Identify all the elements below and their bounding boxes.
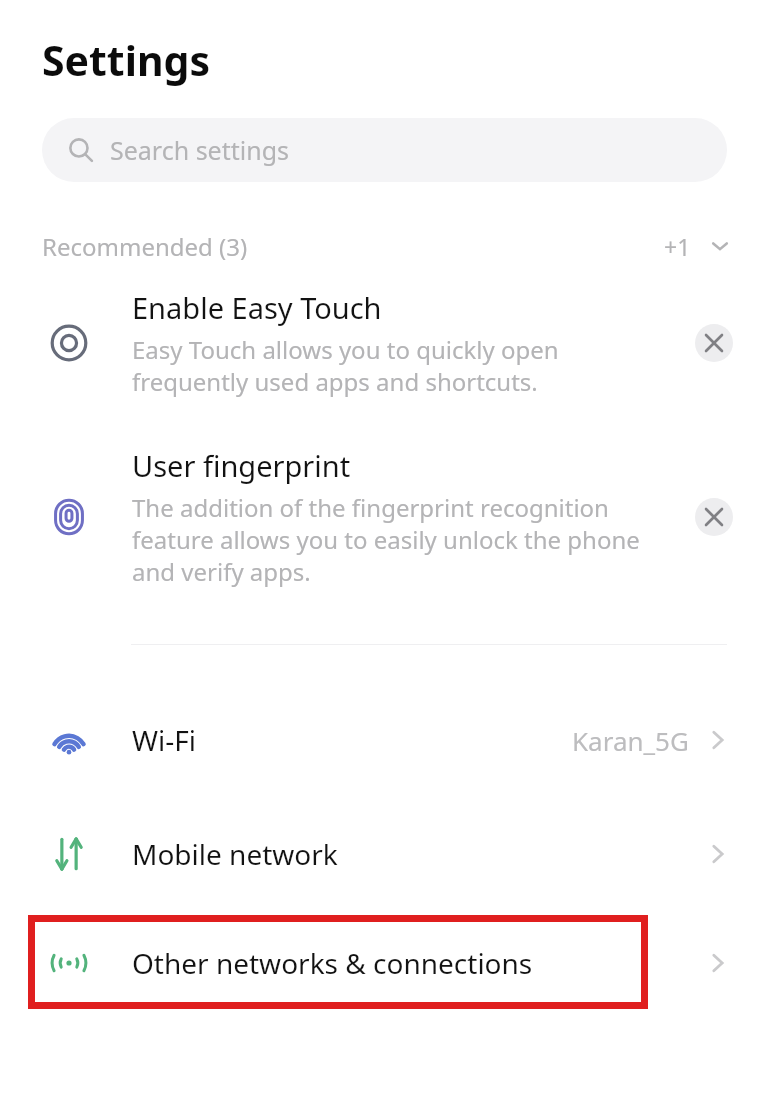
- staticText: Other networks & connections: [132, 944, 533, 982]
- staticText: +1: [664, 231, 691, 262]
- button[interactable]: Mobile network: [0, 815, 769, 893]
- staticText: User fingerprint: [132, 446, 351, 485]
- button[interactable]: User fingerprint: [0, 446, 769, 588]
- staticText: Wi-Fi: [132, 721, 197, 759]
- staticText: Recommended (3): [42, 230, 248, 263]
- button[interactable]: Dismiss: [695, 324, 733, 362]
- staticText: Search settings: [110, 133, 290, 167]
- staticText: Karan_5G: [572, 723, 689, 758]
- button[interactable]: Wi-Fi: [0, 701, 769, 779]
- staticText: Easy Touch allows you to quickly open fr…: [132, 333, 559, 398]
- button[interactable]: Dismiss: [695, 498, 733, 536]
- staticText: Enable Easy Touch: [132, 288, 382, 327]
- staticText: Mobile network: [132, 835, 338, 873]
- button[interactable]: Recommended (3): [0, 226, 769, 266]
- staticText: The addition of the fingerprint recognit…: [132, 491, 640, 588]
- button[interactable]: Enable Easy Touch: [0, 288, 769, 398]
- button[interactable]: Other networks & connections: [0, 915, 769, 1010]
- staticText: Settings: [42, 32, 211, 88]
- button[interactable]: Search settings: [42, 118, 727, 182]
